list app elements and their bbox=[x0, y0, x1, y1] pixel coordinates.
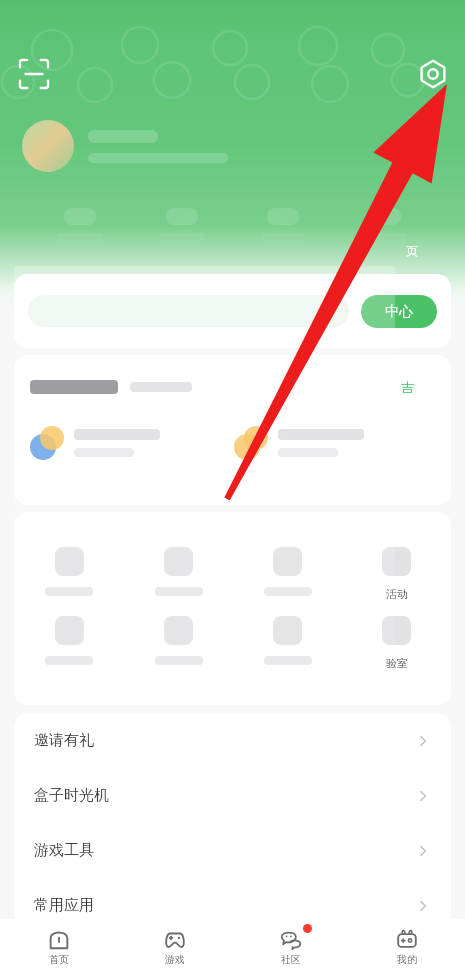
button[interactable] bbox=[58, 208, 102, 242]
button[interactable]: 验室 bbox=[342, 616, 451, 670]
staticText: 吉 bbox=[401, 379, 414, 395]
staticText: 盒子时光机 bbox=[34, 786, 109, 805]
button[interactable] bbox=[14, 616, 124, 665]
button[interactable] bbox=[160, 208, 204, 242]
staticText: 社区 bbox=[281, 953, 301, 966]
staticText: 游戏工具 bbox=[34, 841, 94, 860]
staticText: 验室 bbox=[386, 656, 408, 670]
button[interactable]: 游戏 bbox=[117, 919, 233, 969]
button[interactable]: 邀请有礼 bbox=[14, 713, 451, 768]
button[interactable] bbox=[124, 616, 233, 665]
button[interactable] bbox=[30, 426, 234, 460]
button[interactable] bbox=[363, 208, 407, 242]
button[interactable]: 首页 bbox=[0, 919, 117, 969]
button[interactable] bbox=[22, 120, 465, 172]
button[interactable]: 游戏工具 bbox=[14, 823, 451, 878]
button[interactable] bbox=[234, 426, 439, 460]
button[interactable] bbox=[233, 547, 342, 596]
button[interactable] bbox=[14, 547, 124, 596]
button[interactable]: 活动 bbox=[342, 547, 451, 601]
button[interactable] bbox=[261, 208, 305, 242]
staticText: 邀请有礼 bbox=[34, 731, 94, 750]
button[interactable]: 中心 bbox=[361, 295, 437, 328]
staticText: 常用应用 bbox=[34, 896, 94, 915]
staticText: 中心 bbox=[385, 303, 413, 321]
button[interactable] bbox=[124, 547, 233, 596]
staticText: 首页 bbox=[49, 953, 69, 966]
button[interactable]: 盒子时光机 bbox=[14, 768, 451, 823]
button[interactable]: 扫一扫 bbox=[12, 52, 56, 96]
button[interactable]: 吉 bbox=[375, 373, 439, 400]
button[interactable] bbox=[233, 616, 342, 665]
button[interactable] bbox=[28, 295, 349, 327]
staticText: 活动 bbox=[386, 587, 408, 601]
button[interactable]: 常用应用 bbox=[14, 878, 451, 933]
button[interactable]: 我的 bbox=[349, 919, 465, 969]
button[interactable]: 社区 bbox=[233, 919, 349, 969]
staticText: 页 bbox=[406, 243, 418, 258]
staticText: 我的 bbox=[397, 953, 417, 966]
staticText: 游戏 bbox=[165, 953, 185, 966]
button[interactable]: 设置 bbox=[411, 52, 455, 96]
